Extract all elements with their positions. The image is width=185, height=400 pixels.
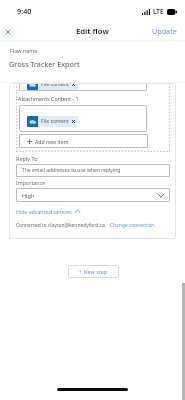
staticText: Edit flow (76, 26, 109, 36)
button[interactable]: Hide advanced options (16, 208, 80, 215)
button[interactable]: + New step (68, 265, 119, 278)
staticText: 9:40 (17, 6, 32, 16)
staticText: Add new item (35, 138, 69, 145)
staticText: Flow name (10, 47, 38, 54)
staticText: Reply To (16, 155, 38, 162)
button[interactable]: High (16, 188, 170, 202)
button[interactable]: Change connection. (110, 222, 156, 229)
staticText: Hide advanced options (16, 208, 72, 215)
staticText: Connected to clayton@kennedyford.ca. (16, 222, 106, 229)
button[interactable]: Update (152, 26, 177, 36)
button[interactable]: Add new item (19, 134, 148, 148)
button[interactable]: Close (1, 25, 14, 38)
staticText: Attachments Content - 1 (18, 95, 79, 102)
staticText: Gross Tracker Export (9, 59, 80, 69)
staticText: LTE (153, 7, 164, 16)
staticText: Importance (16, 179, 46, 186)
staticText: + New step (79, 268, 108, 275)
staticText: File content (41, 118, 69, 125)
staticText: Change connection. (110, 222, 156, 229)
staticText: High (22, 192, 35, 199)
staticText: File content (41, 83, 69, 88)
staticText: Update (152, 26, 177, 36)
staticText: The email addresses to use when replying (22, 167, 121, 174)
